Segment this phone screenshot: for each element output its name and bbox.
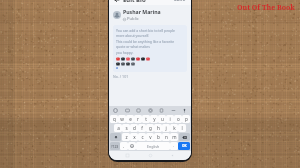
staticText: m [172,134,177,140]
button[interactable]: m [170,133,178,141]
button[interactable]: w [118,115,126,123]
button[interactable]: English [136,142,170,150]
staticText: g [149,125,152,131]
staticText: q [113,116,116,122]
staticText: p [185,116,188,122]
button[interactable]: j [162,124,170,132]
button[interactable]: Emoji [112,107,119,114]
staticText: . [173,143,175,149]
button[interactable]: GIF [124,107,131,114]
button[interactable]: h [154,124,162,132]
button[interactable]: s [122,124,130,132]
staticText: x [133,134,136,140]
button[interactable]: Home [147,152,154,159]
button[interactable]: Back [112,0,121,4]
button[interactable]: z [122,133,130,141]
button[interactable]: g [146,124,154,132]
button[interactable]: x [130,133,138,141]
button[interactable]: Save [172,0,188,4]
staticText: Public [127,16,139,22]
staticText: No. / 101 [113,74,129,79]
button[interactable]: , [120,142,128,150]
button[interactable]: p [182,115,190,123]
other: Backspace [182,135,187,140]
button[interactable]: v [146,133,154,141]
button[interactable]: t [142,115,150,123]
button[interactable]: e [126,115,134,123]
button[interactable]: Emoji [128,142,136,150]
button[interactable]: c [138,133,146,141]
button[interactable]: n [162,133,170,141]
button[interactable]: b [154,133,162,141]
staticText: s [125,125,128,131]
staticText: Out Of The Book [237,3,295,13]
staticText: o [177,116,180,122]
staticText: English [147,144,160,149]
button[interactable]: Clipboard [158,107,165,114]
staticText: t [145,116,147,122]
button[interactable]: d [130,124,138,132]
other: Shift [114,135,118,139]
staticText: d [133,125,136,131]
staticText: you happy. [116,50,134,55]
button[interactable]: Recents [124,152,131,159]
staticText: k [173,125,176,131]
button[interactable]: i [166,115,174,123]
button[interactable]: l [178,124,186,132]
button[interactable]: More [170,107,177,114]
staticText: This could be anything like a favorite q… [116,39,184,49]
button[interactable]: Enter [178,142,190,150]
button[interactable]: ?123 [110,142,120,150]
staticText: y [153,116,156,122]
staticText: i [169,116,171,122]
button[interactable]: Voice input [181,107,188,114]
button[interactable]: Settings [147,107,154,114]
staticText: w [120,116,124,122]
staticText: z [125,134,128,140]
button[interactable]: o [174,115,182,123]
button[interactable]: Shift [110,133,121,141]
staticText: u [161,116,164,122]
staticText: Save [174,0,186,3]
button[interactable]: u [158,115,166,123]
button[interactable]: You can add a short bio to tell people m… [113,25,187,72]
staticText: ?123 [111,144,119,149]
staticText: a [117,125,120,131]
staticText: OK [182,144,187,148]
staticText: l [181,125,183,131]
staticText: v [149,134,152,140]
staticText: e [129,116,132,122]
button[interactable]: r [134,115,142,123]
staticText: r [137,116,139,122]
staticText: c [141,134,144,140]
button[interactable]: Backspace [179,133,190,141]
staticText: Pushar Marina [123,8,161,15]
button[interactable]: f [138,124,146,132]
button[interactable]: Sticker [135,107,142,114]
button[interactable]: a [114,124,122,132]
button[interactable]: q [110,115,118,123]
staticText: h [157,125,160,131]
staticText: , [123,143,125,149]
staticText: f [141,125,143,131]
staticText: b [157,134,160,140]
staticText: n [165,134,168,140]
button[interactable]: Back [169,152,176,159]
staticText: j [165,125,167,131]
button[interactable]: k [170,124,178,132]
button[interactable]: . [170,142,178,150]
staticText: Edit Bio [123,0,146,4]
button[interactable]: y [150,115,158,123]
staticText: You can add a short bio to tell people m… [116,28,184,38]
